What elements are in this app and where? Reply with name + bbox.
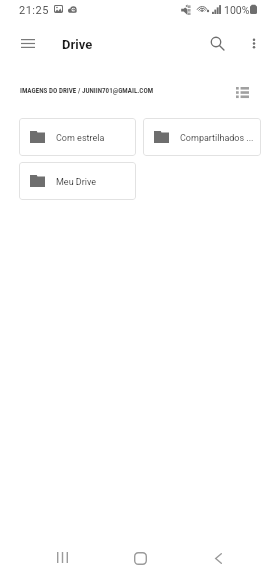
button[interactable]: Meu Drive <box>19 162 136 200</box>
staticText: Compartilhados ... <box>180 133 254 144</box>
button[interactable]: Back <box>200 540 236 576</box>
staticText: Drive <box>62 37 93 52</box>
button[interactable]: Recent apps <box>44 539 80 575</box>
staticText: IMAGENS DO DRIVE / JUNIIN701@GMAIL.COM <box>20 86 154 94</box>
staticText: Meu Drive <box>56 177 97 188</box>
button[interactable]: Compartilhados ... <box>143 118 261 156</box>
button[interactable]: Com estrela <box>19 118 136 156</box>
button[interactable]: Switch to list view <box>231 81 253 103</box>
button[interactable]: Navigation menu <box>11 26 45 60</box>
staticText: Com estrela <box>56 133 105 144</box>
staticText: 21:25 <box>19 4 49 17</box>
button[interactable]: Search <box>201 27 234 60</box>
button[interactable]: Home <box>122 540 158 576</box>
button[interactable]: More options <box>237 27 270 60</box>
staticText: 100% <box>224 4 250 16</box>
